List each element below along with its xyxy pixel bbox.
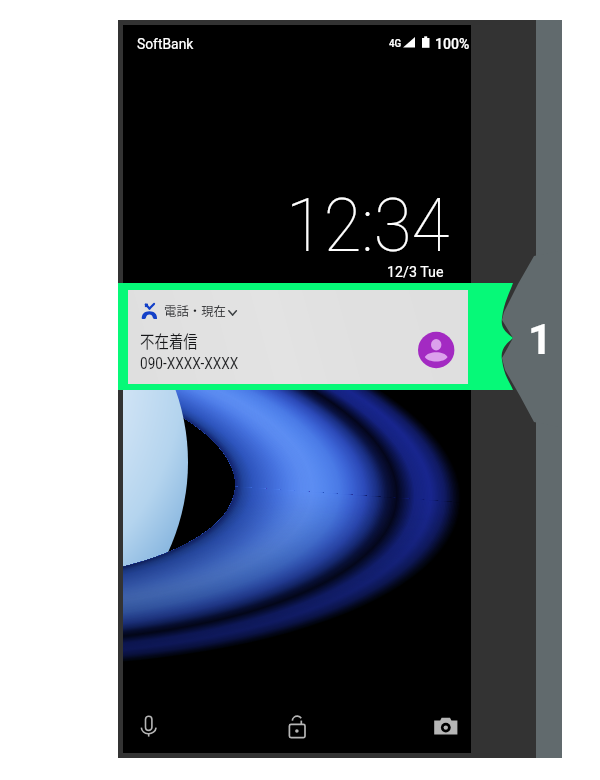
staticText: SoftBank (137, 35, 194, 53)
staticText: 12/3 Tue (387, 263, 444, 281)
staticText: 090-XXXX-XXXX (140, 354, 239, 373)
staticText: 1 (528, 315, 553, 364)
staticText: 100% (435, 35, 470, 53)
staticText: 12:34 (286, 181, 450, 269)
staticText: 不在着信 (140, 328, 198, 353)
staticText: 電話・現在 (164, 302, 226, 320)
staticText: 4G (389, 36, 402, 49)
